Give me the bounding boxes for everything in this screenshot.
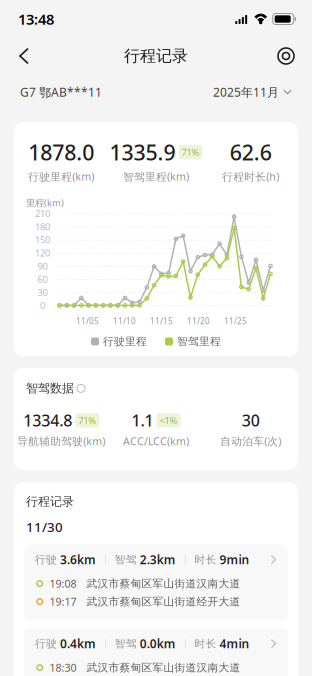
staticText: 4min (220, 636, 250, 651)
staticText: 智驾 (115, 637, 140, 650)
button[interactable]: Back (6, 38, 46, 74)
staticText: 11/05 (76, 316, 99, 326)
staticText: 62.6 (230, 138, 272, 166)
staticText: 71% (78, 414, 96, 427)
staticText: 智驾里程(km) (123, 169, 189, 183)
staticText: 19:17 (49, 594, 76, 609)
staticText: 1335.9 (109, 138, 175, 166)
staticText: 智驾里程 (177, 335, 221, 348)
staticText: 3.6km (60, 552, 96, 567)
staticText: 60 (37, 273, 47, 285)
staticText: 自动泊车(次) (220, 434, 281, 448)
staticText: 武汉市蔡甸区军山街道汉南大道 (86, 577, 240, 590)
button[interactable]: 行驶 (24, 629, 288, 676)
staticText: 0.0km (140, 636, 176, 651)
staticText: 里程(km) (26, 196, 64, 209)
staticText: 0 (40, 299, 45, 312)
staticText: 11/15 (150, 316, 173, 326)
staticText: 180 (35, 220, 50, 233)
staticText: 18:30 (49, 660, 76, 675)
staticText: 时长 (195, 637, 220, 650)
staticText: <1% (159, 414, 177, 427)
staticText: 30 (242, 410, 260, 431)
staticText: 行程记录 (26, 494, 74, 509)
staticText: 13:48 (18, 9, 54, 29)
staticText: G7 鄂AB***11 (20, 84, 102, 100)
staticText: 11/20 (187, 316, 210, 326)
button[interactable]: 行驶 (24, 545, 288, 620)
staticText: 智驾 (115, 553, 140, 566)
staticText: 0.4km (60, 636, 96, 651)
staticText: 150 (35, 234, 50, 246)
staticText: 90 (37, 260, 47, 272)
staticText: 2.3km (140, 552, 176, 567)
staticText: 71% (181, 146, 199, 158)
staticText: 智驾数据 (26, 381, 74, 396)
staticText: 武汉市蔡甸区军山街道经开大道 (86, 595, 240, 608)
staticText: 1.1 (131, 410, 153, 431)
staticText: 行程记录 (124, 46, 188, 66)
button[interactable]: Settings (266, 38, 306, 74)
staticText: 19:08 (49, 576, 76, 591)
staticText: 行程时长(h) (222, 169, 279, 183)
staticText: 行驶里程(km) (28, 169, 94, 183)
staticText: 1334.8 (23, 410, 72, 431)
staticText: 时长 (195, 553, 220, 566)
staticText: ACC/LCC(km) (123, 434, 189, 448)
staticText: 行驶 (35, 553, 60, 566)
staticText: 1878.0 (28, 138, 94, 166)
staticText: 9min (220, 552, 250, 567)
staticText: 120 (35, 247, 50, 259)
staticText: 210 (35, 207, 50, 220)
staticText: 2025年11月 (213, 84, 279, 100)
button[interactable]: 2025年11月 (213, 84, 292, 100)
staticText: 11/30 (26, 518, 63, 536)
staticText: 11/10 (113, 316, 136, 326)
staticText: 30 (37, 286, 47, 298)
staticText: 11/25 (224, 316, 247, 326)
staticText: 行驶里程 (103, 335, 147, 348)
staticText: 武汉市蔡甸区军山街道汉南大道 (86, 661, 240, 674)
staticText: 导航辅助驾驶(km) (17, 434, 105, 448)
staticText: 行驶 (35, 637, 60, 650)
